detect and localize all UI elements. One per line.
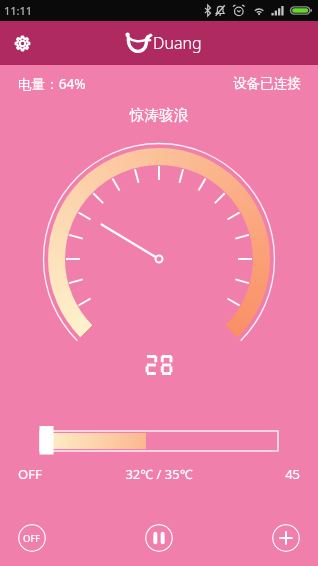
- button[interactable]: OFF: [18, 524, 46, 552]
- button[interactable]: Settings: [7, 28, 37, 58]
- staticText: OFF: [23, 532, 41, 545]
- staticText: 32℃ / 35℃: [0, 465, 318, 483]
- button[interactable]: Pause: [145, 524, 173, 552]
- staticText: 惊涛骇浪: [0, 106, 318, 124]
- button[interactable]: Add: [272, 524, 300, 552]
- staticText: 45: [0, 465, 300, 483]
- staticText: 设备已连接: [233, 75, 301, 92]
- staticText: 电量：64%: [18, 74, 86, 93]
- staticText: OFF: [18, 465, 42, 483]
- staticText: Duang: [153, 32, 202, 54]
- staticText: 11:11: [4, 3, 33, 18]
- button[interactable]: [0, 0, 318, 566]
